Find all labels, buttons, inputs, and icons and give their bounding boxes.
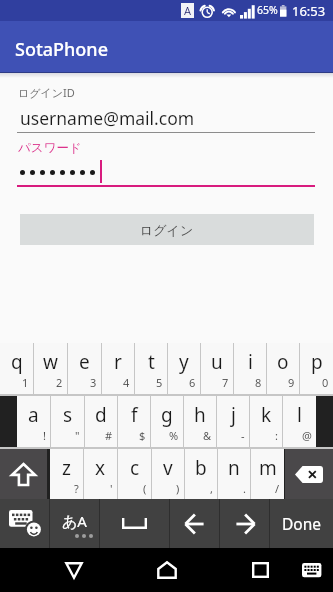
staticText: j bbox=[231, 402, 236, 428]
staticText: 7 bbox=[222, 375, 229, 390]
button[interactable]: v bbox=[152, 449, 184, 499]
staticText: y bbox=[179, 349, 189, 375]
staticText: : bbox=[275, 428, 278, 443]
staticText: 8 bbox=[255, 375, 262, 390]
button[interactable]: j bbox=[217, 396, 249, 447]
staticText: " bbox=[75, 428, 80, 443]
staticText: . bbox=[243, 481, 246, 496]
staticText: 9 bbox=[288, 375, 295, 390]
staticText: s bbox=[63, 402, 73, 428]
staticText: Done bbox=[282, 513, 322, 534]
staticText: 1 bbox=[22, 375, 29, 390]
staticText: 2 bbox=[56, 375, 63, 390]
staticText: r bbox=[114, 349, 122, 375]
button[interactable]: Home bbox=[133, 548, 201, 592]
button[interactable]: Backspace bbox=[285, 449, 333, 499]
button[interactable]: l bbox=[283, 396, 316, 447]
button[interactable]: c bbox=[118, 449, 151, 499]
button[interactable]: x bbox=[84, 449, 117, 499]
staticText: h bbox=[194, 402, 206, 428]
staticText: ログインID bbox=[18, 85, 75, 100]
staticText: & bbox=[203, 428, 212, 443]
staticText: 6 bbox=[189, 375, 196, 390]
staticText: d bbox=[95, 402, 107, 428]
button[interactable]: n bbox=[218, 449, 250, 499]
staticText: q bbox=[11, 349, 23, 375]
staticText: g bbox=[161, 402, 173, 428]
staticText: f bbox=[131, 402, 138, 428]
button[interactable]: Back bbox=[40, 548, 108, 592]
button[interactable]: k bbox=[250, 396, 282, 447]
staticText: b bbox=[195, 455, 207, 481]
button[interactable]: a bbox=[17, 396, 50, 447]
button[interactable]: d bbox=[85, 396, 117, 447]
button[interactable]: Next bbox=[220, 499, 269, 548]
staticText: / bbox=[275, 481, 280, 496]
button[interactable]: e bbox=[68, 343, 101, 394]
button[interactable]: o bbox=[267, 343, 299, 394]
staticText: l bbox=[297, 402, 302, 428]
staticText: 65% bbox=[257, 3, 278, 17]
staticText: z bbox=[62, 455, 71, 481]
staticText: # bbox=[105, 428, 113, 443]
button[interactable]: w bbox=[34, 343, 67, 394]
staticText: 0 bbox=[322, 375, 329, 390]
button[interactable]: ログイン bbox=[20, 214, 314, 245]
staticText: , bbox=[210, 481, 213, 496]
button[interactable]: z bbox=[50, 449, 83, 499]
button[interactable]: g bbox=[151, 396, 183, 447]
button[interactable]: Switch keyboard bbox=[290, 548, 333, 592]
staticText: ( bbox=[143, 481, 147, 496]
staticText: username@mail.com bbox=[20, 106, 195, 130]
button[interactable]: q bbox=[0, 343, 33, 394]
staticText: ! bbox=[43, 428, 46, 443]
staticText: k bbox=[261, 402, 272, 428]
button[interactable]: f bbox=[118, 396, 150, 447]
button[interactable]: Shift bbox=[0, 449, 47, 499]
staticText: c bbox=[130, 455, 140, 481]
staticText: u bbox=[211, 349, 223, 375]
staticText: e bbox=[79, 349, 90, 375]
staticText: 5 bbox=[156, 375, 163, 390]
button[interactable]: Done bbox=[270, 499, 333, 548]
button[interactable]: s bbox=[51, 396, 84, 447]
button[interactable]: Previous bbox=[170, 499, 219, 548]
staticText: i bbox=[248, 349, 253, 375]
button[interactable]: b bbox=[185, 449, 217, 499]
button[interactable]: u bbox=[201, 343, 233, 394]
button[interactable]: t bbox=[135, 343, 167, 394]
button[interactable]: r bbox=[102, 343, 134, 394]
staticText: m bbox=[259, 455, 277, 481]
staticText: x bbox=[95, 455, 106, 481]
staticText: a bbox=[28, 402, 39, 428]
staticText: n bbox=[228, 455, 240, 481]
staticText: @ bbox=[302, 428, 312, 443]
staticText: あA bbox=[62, 511, 87, 531]
button[interactable]: m bbox=[251, 449, 284, 499]
staticText: $ bbox=[139, 428, 146, 443]
staticText: ログイン bbox=[140, 222, 194, 238]
staticText: v bbox=[163, 455, 173, 481]
staticText: ) bbox=[176, 481, 180, 496]
staticText: ' bbox=[110, 481, 113, 496]
button[interactable]: i bbox=[234, 343, 266, 394]
staticText: o bbox=[277, 349, 289, 375]
button[interactable]: p bbox=[300, 343, 333, 394]
button[interactable]: y bbox=[168, 343, 200, 394]
staticText: パスワード bbox=[18, 140, 82, 156]
staticText: - bbox=[241, 428, 245, 443]
staticText: p bbox=[311, 349, 323, 375]
button[interactable]: Space bbox=[100, 499, 169, 548]
button[interactable]: h bbox=[184, 396, 216, 447]
staticText: 3 bbox=[90, 375, 97, 390]
button[interactable]: Recent apps bbox=[226, 548, 294, 592]
staticText: ? bbox=[74, 481, 79, 496]
button[interactable]: Switch input language bbox=[50, 499, 99, 548]
staticText: A bbox=[184, 3, 192, 18]
staticText: t bbox=[148, 349, 155, 375]
button[interactable]: Change keyboard bbox=[0, 499, 49, 548]
staticText: 4 bbox=[123, 375, 130, 390]
staticText: SotaPhone bbox=[15, 37, 108, 62]
staticText: 16:53 bbox=[292, 2, 326, 20]
staticText: w bbox=[43, 349, 58, 375]
